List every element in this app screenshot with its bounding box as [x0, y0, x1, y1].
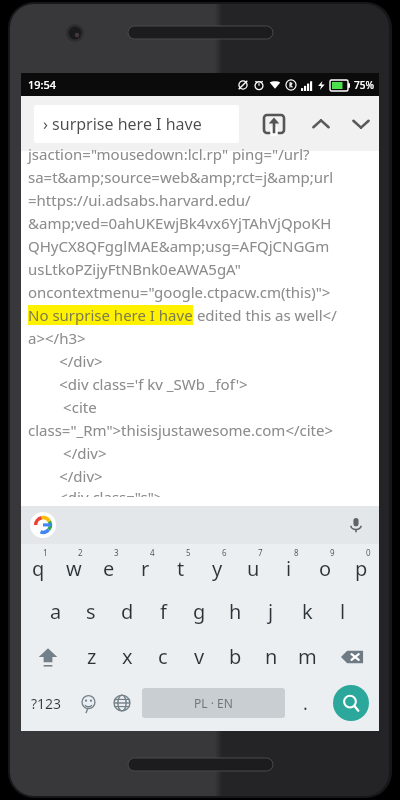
button[interactable]: › surprise here I have: [34, 105, 239, 143]
staticText: 8: [294, 547, 299, 558]
staticText: v: [194, 643, 205, 670]
staticText: o: [319, 555, 332, 582]
staticText: p: [355, 555, 368, 582]
staticText: <div class='f kv _SWb _fof'>: [28, 374, 248, 394]
button[interactable]: 4: [127, 544, 163, 589]
staticText: jsaction="mousedown:lcl.rp" ping="/url?: [28, 144, 310, 164]
staticText: u: [247, 555, 260, 582]
staticText: class="_Rm">thisisjustawesome.com</cite>: [28, 420, 334, 440]
staticText: 9: [330, 547, 335, 558]
staticText: 5: [186, 547, 191, 558]
staticText: </div>: [28, 351, 103, 371]
button[interactable]: 0: [343, 544, 379, 589]
staticText: y: [212, 555, 223, 582]
button[interactable]: 9: [307, 544, 343, 589]
button[interactable]: .: [288, 679, 322, 727]
staticText: PL · EN: [194, 695, 233, 711]
button[interactable]: Previous match: [300, 103, 342, 145]
button[interactable]: PL · EN: [142, 688, 285, 718]
staticText: j: [268, 598, 274, 625]
button[interactable]: 2: [56, 544, 91, 589]
staticText: <cite: [28, 397, 97, 417]
staticText: › surprise here I have: [43, 113, 202, 135]
staticText: ?123: [31, 694, 62, 713]
staticText: h: [229, 598, 242, 625]
staticText: </div>: [28, 466, 103, 486]
staticText: e: [103, 555, 115, 582]
button[interactable]: Next match: [342, 103, 379, 145]
staticText: =https://ui.adsabs.harvard.edu/: [28, 190, 251, 210]
button[interactable]: ?123: [21, 679, 71, 727]
staticText: k: [302, 598, 313, 625]
button[interactable]: z: [74, 634, 109, 679]
button[interactable]: b: [217, 634, 253, 679]
staticText: .: [303, 691, 308, 716]
button[interactable]: Emoji: [71, 679, 105, 727]
button[interactable]: 5: [163, 544, 199, 589]
staticText: No surprise here I have: [28, 305, 193, 325]
staticText: 2: [78, 547, 83, 558]
button[interactable]: x: [109, 634, 145, 679]
button[interactable]: j: [253, 589, 289, 634]
staticText: edited this as well</: [193, 305, 337, 325]
staticText: q: [32, 555, 45, 582]
staticText: 6: [222, 547, 227, 558]
staticText: s: [86, 598, 96, 625]
staticText: t: [177, 555, 185, 582]
staticText: </div>: [28, 443, 107, 463]
staticText: 3: [114, 547, 119, 558]
staticText: x: [122, 643, 133, 670]
staticText: b: [229, 643, 242, 670]
button[interactable]: m: [289, 634, 325, 679]
button[interactable]: n: [253, 634, 289, 679]
staticText: 19:54: [28, 77, 57, 92]
staticText: a></h3>: [28, 328, 86, 348]
button[interactable]: a: [38, 589, 73, 634]
staticText: z: [87, 643, 97, 670]
button[interactable]: c: [145, 634, 181, 679]
button[interactable]: Shift: [21, 634, 74, 679]
staticText: m: [298, 643, 317, 670]
staticText: n: [265, 643, 278, 670]
staticText: 7: [258, 547, 263, 558]
button[interactable]: Open in browser: [254, 104, 294, 144]
staticText: l: [340, 598, 346, 625]
staticText: a: [50, 598, 62, 625]
button[interactable]: Voice input: [343, 512, 369, 538]
button[interactable]: Change language: [105, 679, 139, 727]
button[interactable]: f: [145, 589, 181, 634]
staticText: 1: [43, 547, 48, 558]
staticText: c: [158, 643, 168, 670]
staticText: &amp;ved=0ahUKEwjBk4vx6YjTAhVjQpoKH: [28, 213, 332, 233]
button[interactable]: 6: [199, 544, 235, 589]
button[interactable]: v: [181, 634, 217, 679]
staticText: d: [121, 598, 134, 625]
button[interactable]: 8: [271, 544, 307, 589]
staticText: 0: [366, 547, 371, 558]
staticText: QHyCX8QFgglMAE&amp;usg=AFQjCNGGm: [28, 236, 330, 256]
button[interactable]: 3: [91, 544, 127, 589]
staticText: sa=t&amp;source=web&amp;rct=j&amp;url: [28, 167, 334, 187]
staticText: usLtkoPZijyFtNBnk0eAWA5gA": [28, 259, 241, 279]
staticText: r: [141, 555, 150, 582]
button[interactable]: l: [325, 589, 361, 634]
staticText: 75%: [354, 78, 374, 92]
staticText: oncontextmenu="google.ctpacw.cm(this)">: [28, 282, 331, 302]
button[interactable]: 1: [21, 544, 56, 589]
staticText: 4: [150, 547, 155, 558]
button[interactable]: h: [217, 589, 253, 634]
staticText: f: [160, 598, 167, 625]
button[interactable]: Search: [322, 679, 379, 727]
staticText: w: [66, 555, 82, 582]
button[interactable]: d: [109, 589, 145, 634]
button[interactable]: k: [289, 589, 325, 634]
staticText: g: [193, 598, 206, 625]
staticText: <div class="s">: [28, 487, 163, 497]
button[interactable]: Google: [30, 512, 56, 538]
staticText: i: [286, 555, 292, 582]
button[interactable]: Backspace: [325, 634, 379, 679]
button[interactable]: s: [73, 589, 109, 634]
button[interactable]: g: [181, 589, 217, 634]
button[interactable]: 7: [235, 544, 271, 589]
